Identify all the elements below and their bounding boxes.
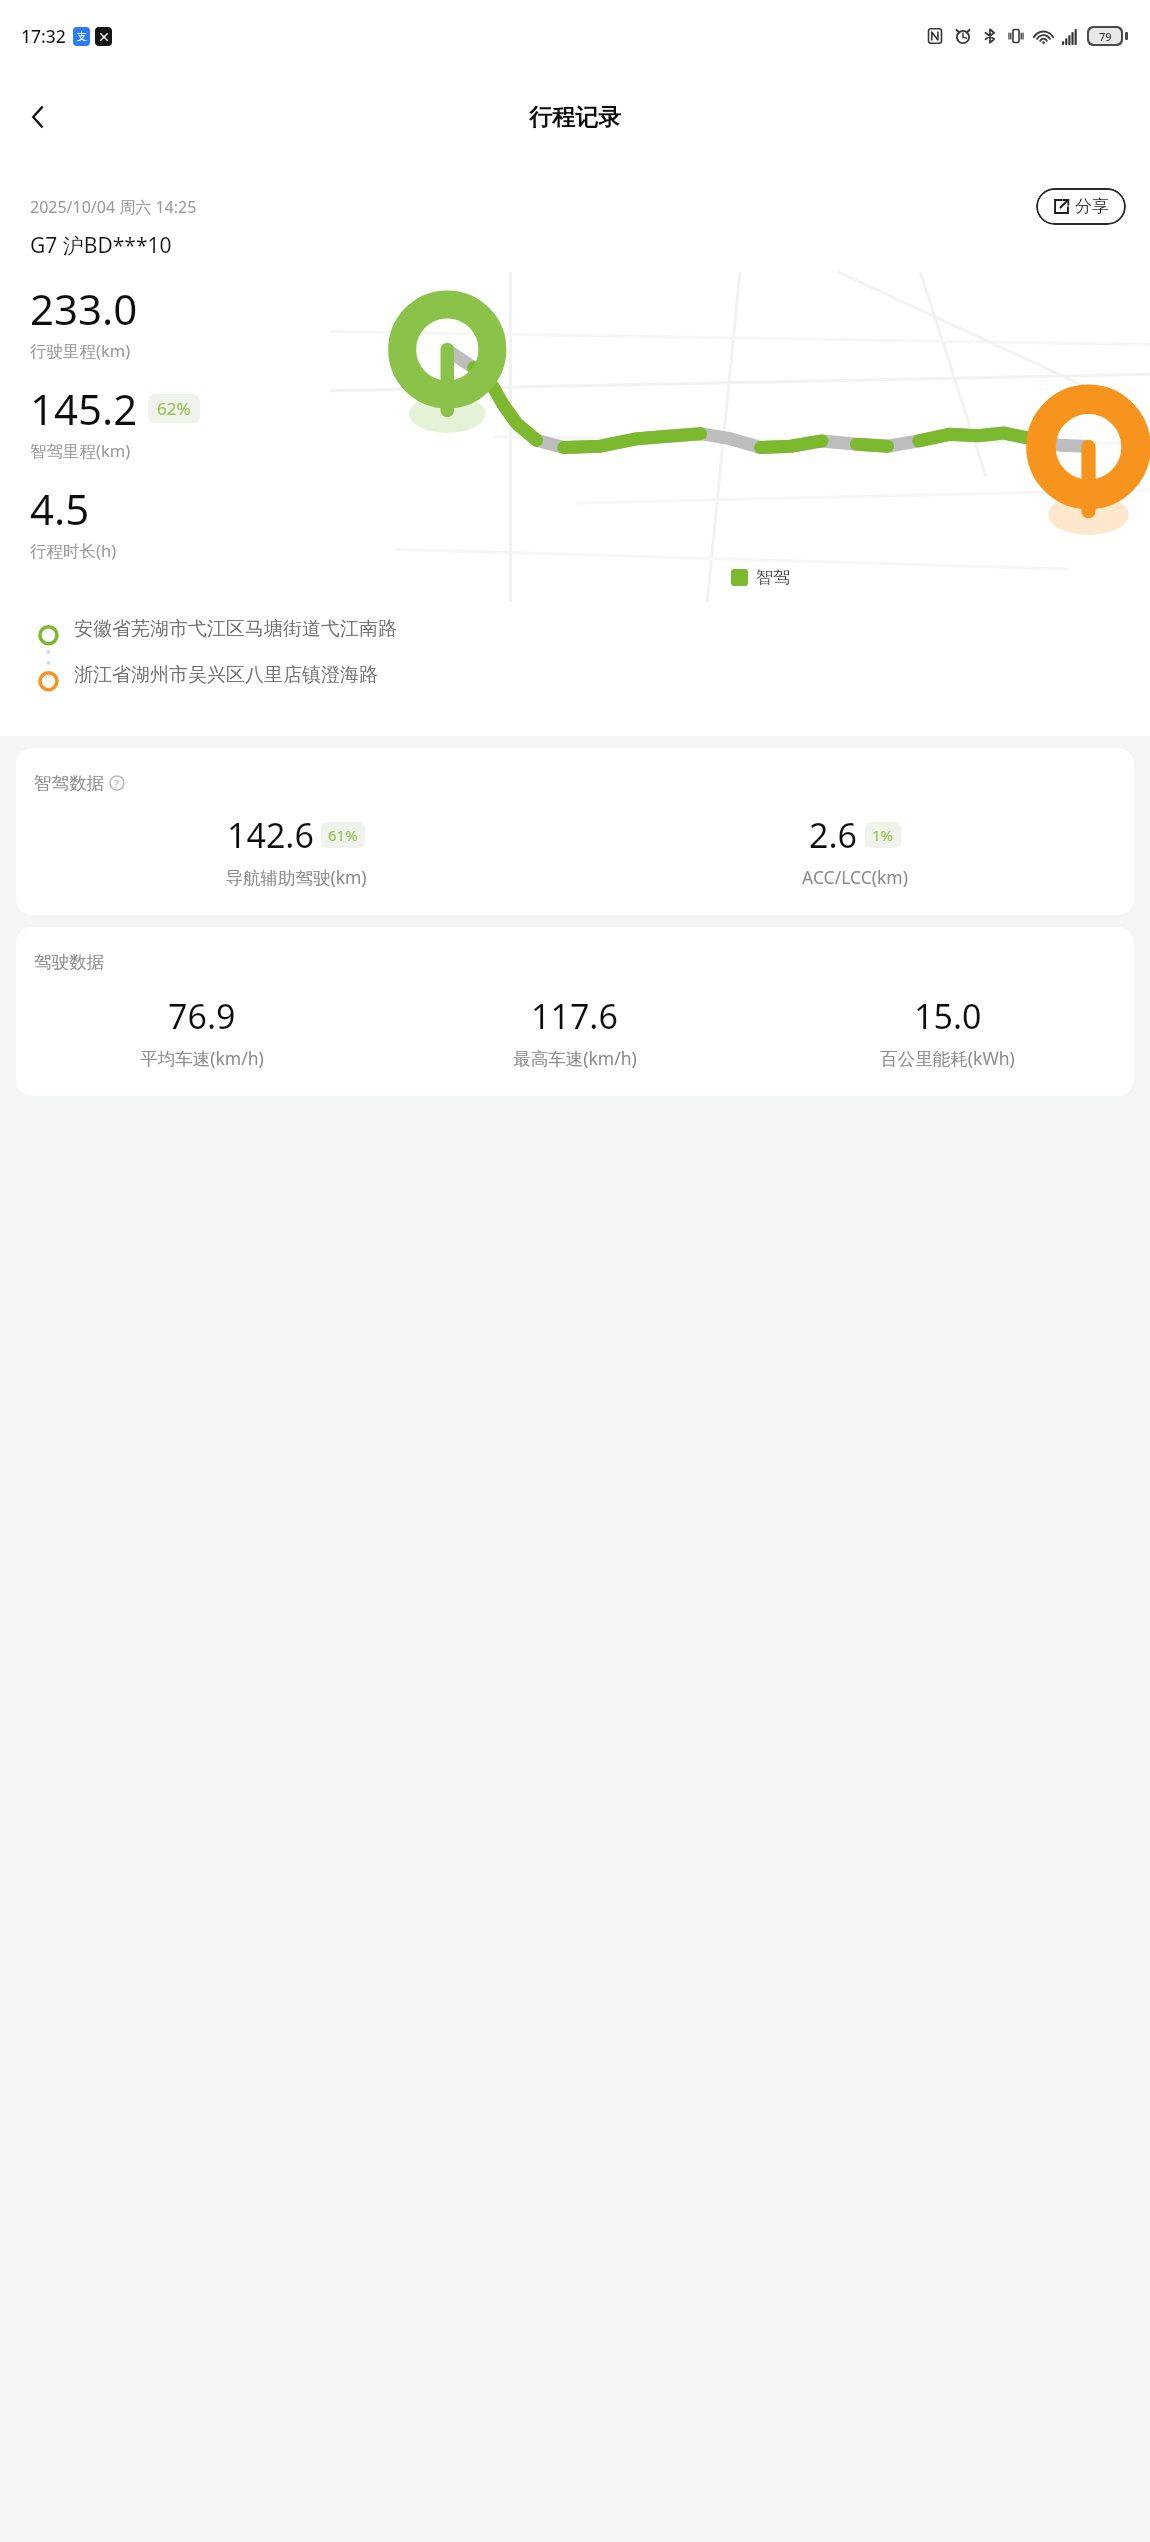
staticText: 浙江省湖州市吴兴区八里店镇澄海路 <box>74 663 378 687</box>
staticText: 智驾里程(km) <box>30 439 131 462</box>
staticText: 支 <box>77 30 87 43</box>
staticText: 61% <box>328 825 358 845</box>
staticText: 4.5 <box>30 480 90 537</box>
staticText: 142.6 <box>227 812 314 858</box>
button[interactable]: 智驾数据 <box>16 748 1134 915</box>
button[interactable]: Back <box>10 89 66 145</box>
staticText: 百公里能耗(kWh) <box>880 1046 1015 1070</box>
staticText: 平均车速(km/h) <box>140 1046 264 1070</box>
staticText: 行程时长(h) <box>30 539 117 562</box>
button[interactable]: 分享 <box>1036 188 1126 225</box>
staticText: 117.6 <box>531 993 618 1039</box>
staticText: 2025/10/04 周六 14:25 <box>30 196 197 218</box>
staticText: 智驾 <box>756 567 790 588</box>
staticText: 62% <box>157 397 191 420</box>
staticText: 15.0 <box>914 993 982 1039</box>
staticText: 17:32 <box>21 24 66 48</box>
staticText: 驾驶数据 <box>34 951 104 973</box>
staticText: 分享 <box>1075 196 1109 217</box>
staticText: 2.6 <box>809 812 858 858</box>
staticText: 76.9 <box>168 993 236 1039</box>
staticText: 最高车速(km/h) <box>513 1046 637 1070</box>
staticText: 79 <box>1099 29 1112 44</box>
staticText: 行程记录 <box>529 103 621 132</box>
staticText: 智驾数据 <box>34 772 104 794</box>
staticText: 导航辅助驾驶(km) <box>225 865 367 889</box>
button[interactable]: 驾驶数据 <box>16 927 1134 1096</box>
staticText: 安徽省芜湖市弋江区马塘街道弋江南路 <box>74 617 397 641</box>
staticText: ? <box>114 776 119 791</box>
staticText: 233.0 <box>30 280 138 337</box>
staticText: 行驶里程(km) <box>30 339 131 362</box>
staticText: 145.2 <box>30 380 138 437</box>
staticText: 1% <box>872 825 894 845</box>
staticText: G7 沪BD***10 <box>30 231 172 260</box>
staticText: ACC/LCC(km) <box>802 865 908 889</box>
